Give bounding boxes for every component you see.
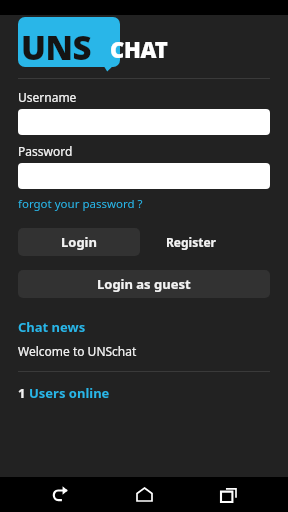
button[interactable]: Back	[36, 477, 84, 512]
button[interactable]: Login as guest	[18, 270, 270, 298]
staticText: Register	[166, 234, 216, 250]
button[interactable]	[18, 163, 270, 189]
button[interactable]: Recent apps	[204, 477, 252, 512]
button[interactable]	[18, 109, 270, 135]
staticText: Password	[18, 143, 73, 159]
staticText: Welcome to UNSchat	[18, 343, 137, 359]
button[interactable]: Register	[162, 230, 220, 254]
staticText: CHAT	[110, 34, 168, 64]
button[interactable]: Home	[120, 477, 168, 512]
button[interactable]: 1	[18, 384, 110, 402]
button[interactable]: forgot your password ?	[18, 195, 143, 213]
staticText: Users online	[29, 384, 110, 402]
staticText: UNS	[21, 25, 92, 70]
staticText: 1	[18, 384, 29, 402]
staticText: Username	[18, 89, 77, 105]
staticText: Login	[61, 233, 97, 251]
staticText: forgot your password ?	[18, 196, 143, 212]
button[interactable]: Login	[18, 228, 140, 256]
staticText: Chat news	[18, 318, 86, 336]
staticText: Login as guest	[97, 275, 191, 293]
